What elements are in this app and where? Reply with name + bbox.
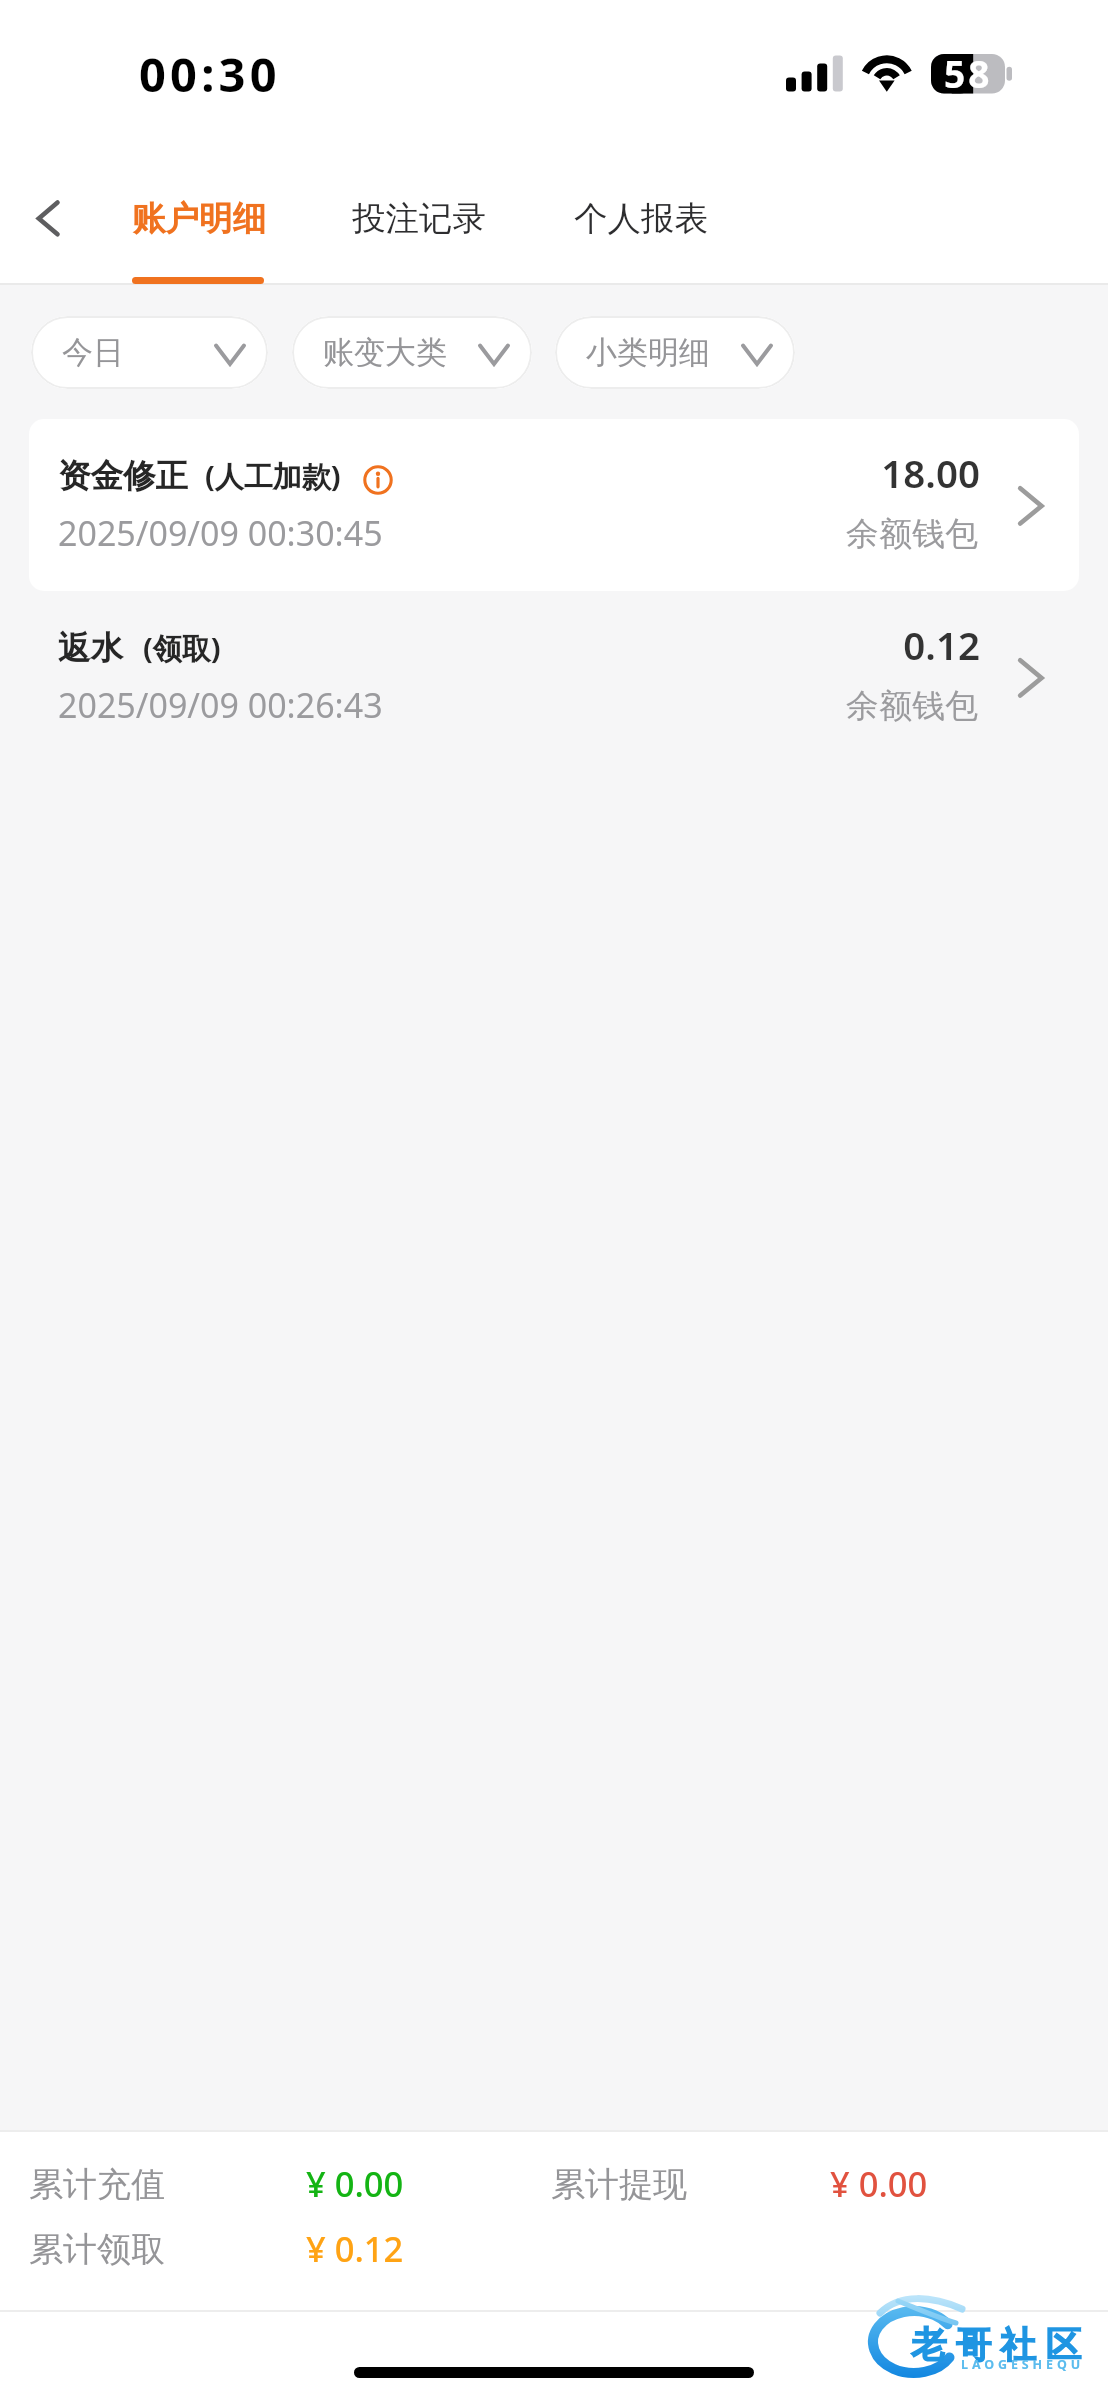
button[interactable]: 个人报表 [550,150,730,285]
staticText: ¥ 0.12 [306,2225,404,2272]
button[interactable]: 小类明细 [555,316,795,389]
staticText: 余额钱包 [678,685,978,727]
staticText: 返水 [58,628,123,669]
staticText: 投注记录 [352,198,486,240]
staticText: 2025/09/09 00:26:43 [58,682,383,728]
staticText: (领取) [143,628,221,668]
staticText: 0.12 [680,619,980,671]
staticText: 账户明细 [132,198,266,240]
button[interactable]: More information [363,465,393,495]
staticText: (人工加款) [205,456,341,496]
staticText: 老哥社区 [911,2323,1091,2368]
button[interactable]: 投注记录 [328,150,508,285]
staticText: 2025/09/09 00:30:45 [58,510,383,556]
staticText: 个人报表 [574,198,708,240]
staticText: 累计领取 [29,2228,165,2271]
button[interactable]: 返水 [29,591,1079,763]
staticText: 余额钱包 [678,513,978,555]
staticText: 58 [944,48,993,98]
button[interactable]: 账变大类 [292,316,532,389]
staticText: ¥ 0.00 [306,2160,404,2207]
button[interactable]: 今日 [31,316,268,389]
staticText: 账变大类 [323,333,447,372]
staticText: 累计充值 [29,2163,165,2206]
staticText: 累计提现 [551,2163,687,2206]
button[interactable]: 资金修正 [29,419,1079,591]
staticText: 今日 [62,333,124,372]
staticText: 18.00 [680,447,980,499]
button[interactable]: Back [9,178,89,258]
staticText: LAOGESHEQU [961,2356,1085,2373]
staticText: ¥ 0.00 [830,2160,928,2207]
staticText: 资金修正 [58,456,188,497]
staticText: 00:30 [139,42,281,106]
button[interactable]: 账户明细 [108,150,288,285]
staticText: 小类明细 [586,333,710,372]
